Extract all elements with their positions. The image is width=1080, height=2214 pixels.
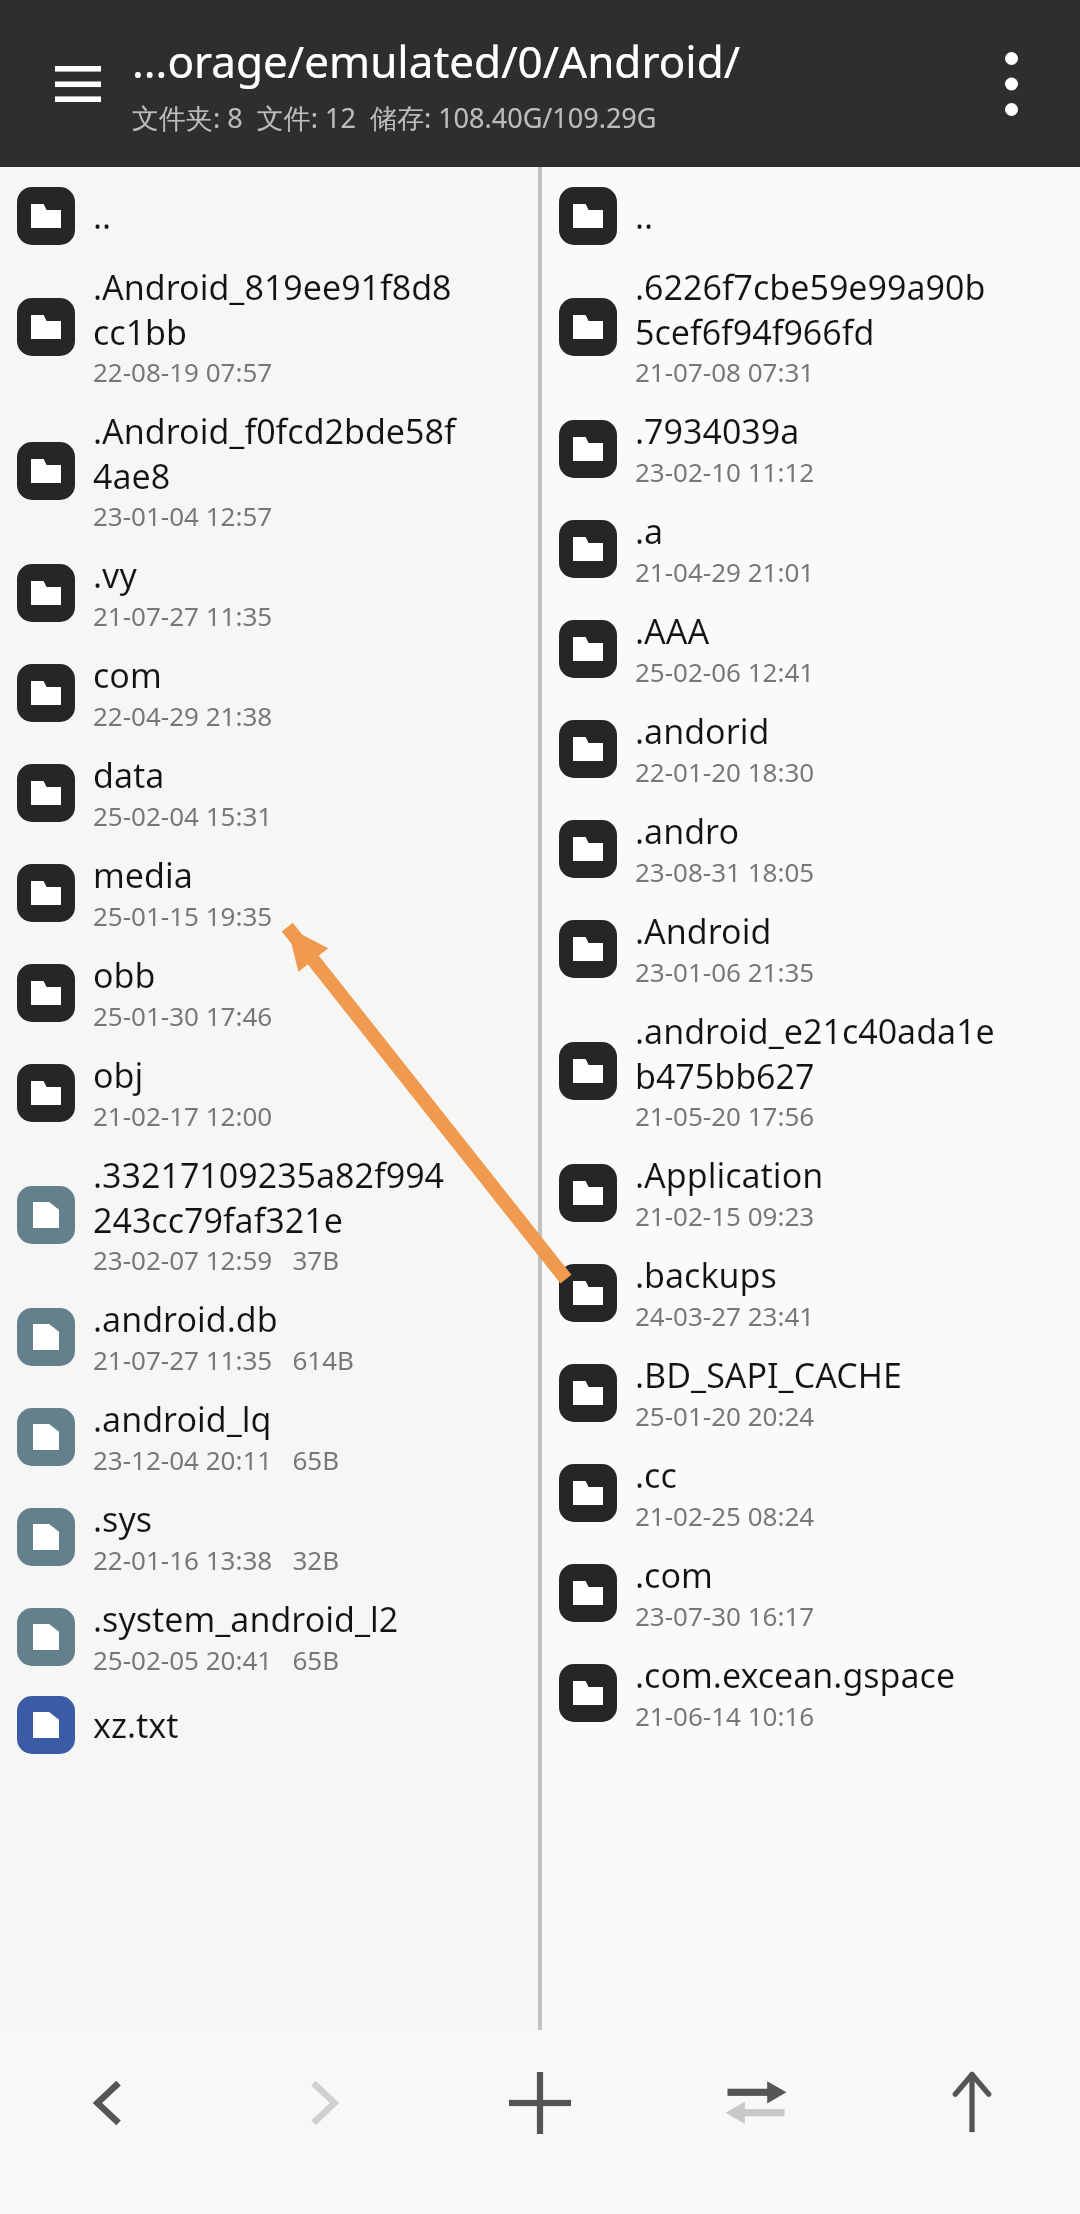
button[interactable]: .sys [0,1487,538,1587]
staticText: .6226f7cbe59e99a90b 5cef6f94f966fd [635,264,986,354]
staticText: .android.db [93,1296,278,1342]
staticText: 23-02-10 11:12 [635,454,815,489]
button[interactable]: .android_lq [0,1387,538,1487]
button[interactable]: .7934039a [542,399,1080,499]
button[interactable]: .system_android_l2 [0,1587,538,1687]
staticText: 22-01-20 18:30 [635,754,815,789]
staticText: 21-04-29 21:01 [635,554,815,589]
button[interactable]: Back [0,2030,216,2214]
button[interactable]: data [0,743,538,843]
button[interactable]: .vy [0,543,538,643]
staticText: .Android_f0fcd2bde58f 4ae8 [93,408,456,498]
staticText: media [93,852,193,898]
staticText: 23-07-30 16:17 [635,1598,815,1633]
button[interactable]: More options [966,39,1056,129]
staticText: 25-02-06 12:41 [635,654,815,689]
staticText: .33217109235a82f994 243cc79faf321e [93,1152,445,1242]
staticText: obb [93,952,156,998]
button[interactable]: .33217109235a82f994 243cc79faf321e [0,1143,538,1287]
staticText: 21-02-17 12:00 [93,1098,273,1133]
staticText: .. [635,193,654,239]
button[interactable]: .a [542,499,1080,599]
staticText: 23-02-07 12:59 37B [93,1242,340,1277]
staticText: .com.excean.gspace [635,1652,956,1698]
button[interactable]: xz.txt [0,1687,538,1764]
button[interactable]: Up [864,2030,1080,2214]
button[interactable]: .backups [542,1243,1080,1343]
staticText: ...orage/emulated/0/Android/ [132,31,741,91]
button[interactable]: .Android_819ee91f8d8 cc1bb [0,255,538,399]
button[interactable]: .Application [542,1143,1080,1243]
button[interactable]: .android_e21c40ada1e b475bb627 [542,999,1080,1143]
staticText: 23-12-04 20:11 65B [93,1442,340,1477]
staticText: 25-02-04 15:31 [93,798,273,833]
button[interactable]: media [0,843,538,943]
staticText: .backups [635,1252,777,1298]
staticText: .sys [93,1496,153,1542]
staticText: data [93,752,165,798]
staticText: obj [93,1052,144,1098]
staticText: .andorid [635,708,770,754]
staticText: 22-08-19 07:57 [93,354,273,389]
button[interactable]: .com [542,1543,1080,1643]
staticText: 25-01-20 20:24 [635,1398,815,1433]
staticText: 25-01-30 17:46 [93,998,273,1033]
staticText: .Application [635,1152,824,1198]
staticText: 25-02-05 20:41 65B [93,1642,340,1677]
staticText: 23-08-31 18:05 [635,854,815,889]
button[interactable]: .Android_f0fcd2bde58f 4ae8 [0,399,538,543]
staticText: .Android [635,908,772,954]
staticText: 24-03-27 23:41 [635,1298,815,1333]
staticText: .android_e21c40ada1e b475bb627 [635,1008,995,1098]
button[interactable]: .andro [542,799,1080,899]
staticText: xz.txt [93,1702,179,1748]
staticText: .. [93,193,112,239]
staticText: .andro [635,808,740,854]
staticText: 22-04-29 21:38 [93,698,273,733]
staticText: .com [635,1552,713,1598]
staticText: .AAA [635,608,710,654]
staticText: 23-01-04 12:57 [93,498,273,533]
button[interactable]: com [0,643,538,743]
button[interactable]: .cc [542,1443,1080,1543]
staticText: 23-01-06 21:35 [635,954,815,989]
staticText: 21-07-08 07:31 [635,354,815,389]
staticText: .7934039a [635,408,800,454]
button[interactable]: .. [0,167,538,255]
button[interactable]: Forward [216,2030,432,2214]
staticText: .BD_SAPI_CACHE [635,1352,902,1398]
staticText: .system_android_l2 [93,1596,399,1642]
staticText: .cc [635,1452,677,1498]
staticText: 21-02-15 09:23 [635,1198,815,1233]
button[interactable]: .android.db [0,1287,538,1387]
staticText: com [93,652,162,698]
button[interactable]: .com.excean.gspace [542,1643,1080,1743]
button[interactable]: Transfer [648,2030,864,2214]
button[interactable]: obb [0,943,538,1043]
button[interactable]: New [432,2030,648,2214]
button[interactable]: .BD_SAPI_CACHE [542,1343,1080,1443]
staticText: 21-05-20 17:56 [635,1098,815,1133]
staticText: 21-07-27 11:35 614B [93,1342,354,1377]
button[interactable]: .AAA [542,599,1080,699]
staticText: 文件夹: 8 文件: 12 储存: 108.40G/109.29G [132,99,657,136]
button[interactable]: .. [542,167,1080,255]
staticText: 21-07-27 11:35 [93,598,273,633]
staticText: 21-02-25 08:24 [635,1498,815,1533]
staticText: 21-06-14 10:16 [635,1698,815,1733]
button[interactable]: .6226f7cbe59e99a90b 5cef6f94f966fd [542,255,1080,399]
button[interactable]: .andorid [542,699,1080,799]
staticText: 22-01-16 13:38 32B [93,1542,340,1577]
button[interactable]: obj [0,1043,538,1143]
staticText: 25-01-15 19:35 [93,898,273,933]
button[interactable]: Menu [36,42,120,126]
button[interactable]: .Android [542,899,1080,999]
staticText: .vy [93,552,137,598]
staticText: .a [635,508,664,554]
staticText: .Android_819ee91f8d8 cc1bb [93,264,452,354]
staticText: .android_lq [93,1396,272,1442]
